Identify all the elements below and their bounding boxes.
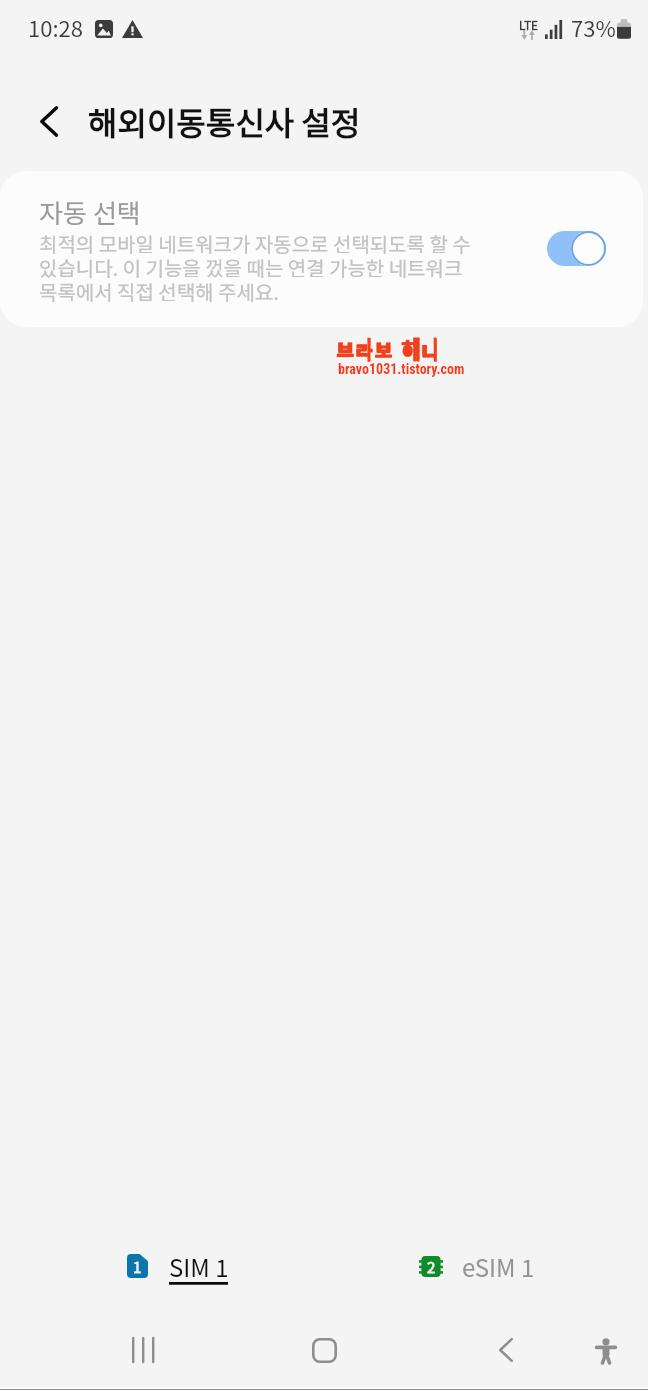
button[interactable]: 2 — [392, 1231, 559, 1289]
button[interactable]: 1 — [100, 1231, 255, 1289]
staticText: LTE — [519, 16, 539, 33]
staticText: 최적의 모바일 네트워크가 자동으로 선택되도록 할 수 있습니다. 이 기능을… — [39, 229, 471, 306]
staticText: 자동 선택 — [39, 193, 141, 231]
staticText: 브라보 해니 — [335, 338, 438, 365]
button[interactable]: 자동 선택 켜짐 — [547, 231, 606, 266]
button[interactable]: 최근 앱 — [98, 1312, 188, 1390]
staticText: 2 — [427, 1256, 436, 1277]
button[interactable]: 접근성 — [561, 1312, 648, 1390]
button[interactable]: 뒤로 — [461, 1312, 551, 1390]
button[interactable]: 뒤로 가기 — [14, 86, 84, 156]
staticText: 해외이동통신사 설정 — [88, 98, 361, 144]
staticText: 10:28 — [28, 11, 83, 43]
staticText: eSIM 1 — [462, 1249, 535, 1284]
button[interactable]: 자동 선택 — [0, 171, 643, 327]
staticText: 1 — [133, 1256, 142, 1278]
button[interactable]: 홈 — [279, 1312, 369, 1390]
staticText: 73% — [571, 11, 616, 43]
staticText: SIM 1 — [169, 1249, 229, 1284]
staticText: bravo1031.tistory.com — [338, 361, 465, 377]
